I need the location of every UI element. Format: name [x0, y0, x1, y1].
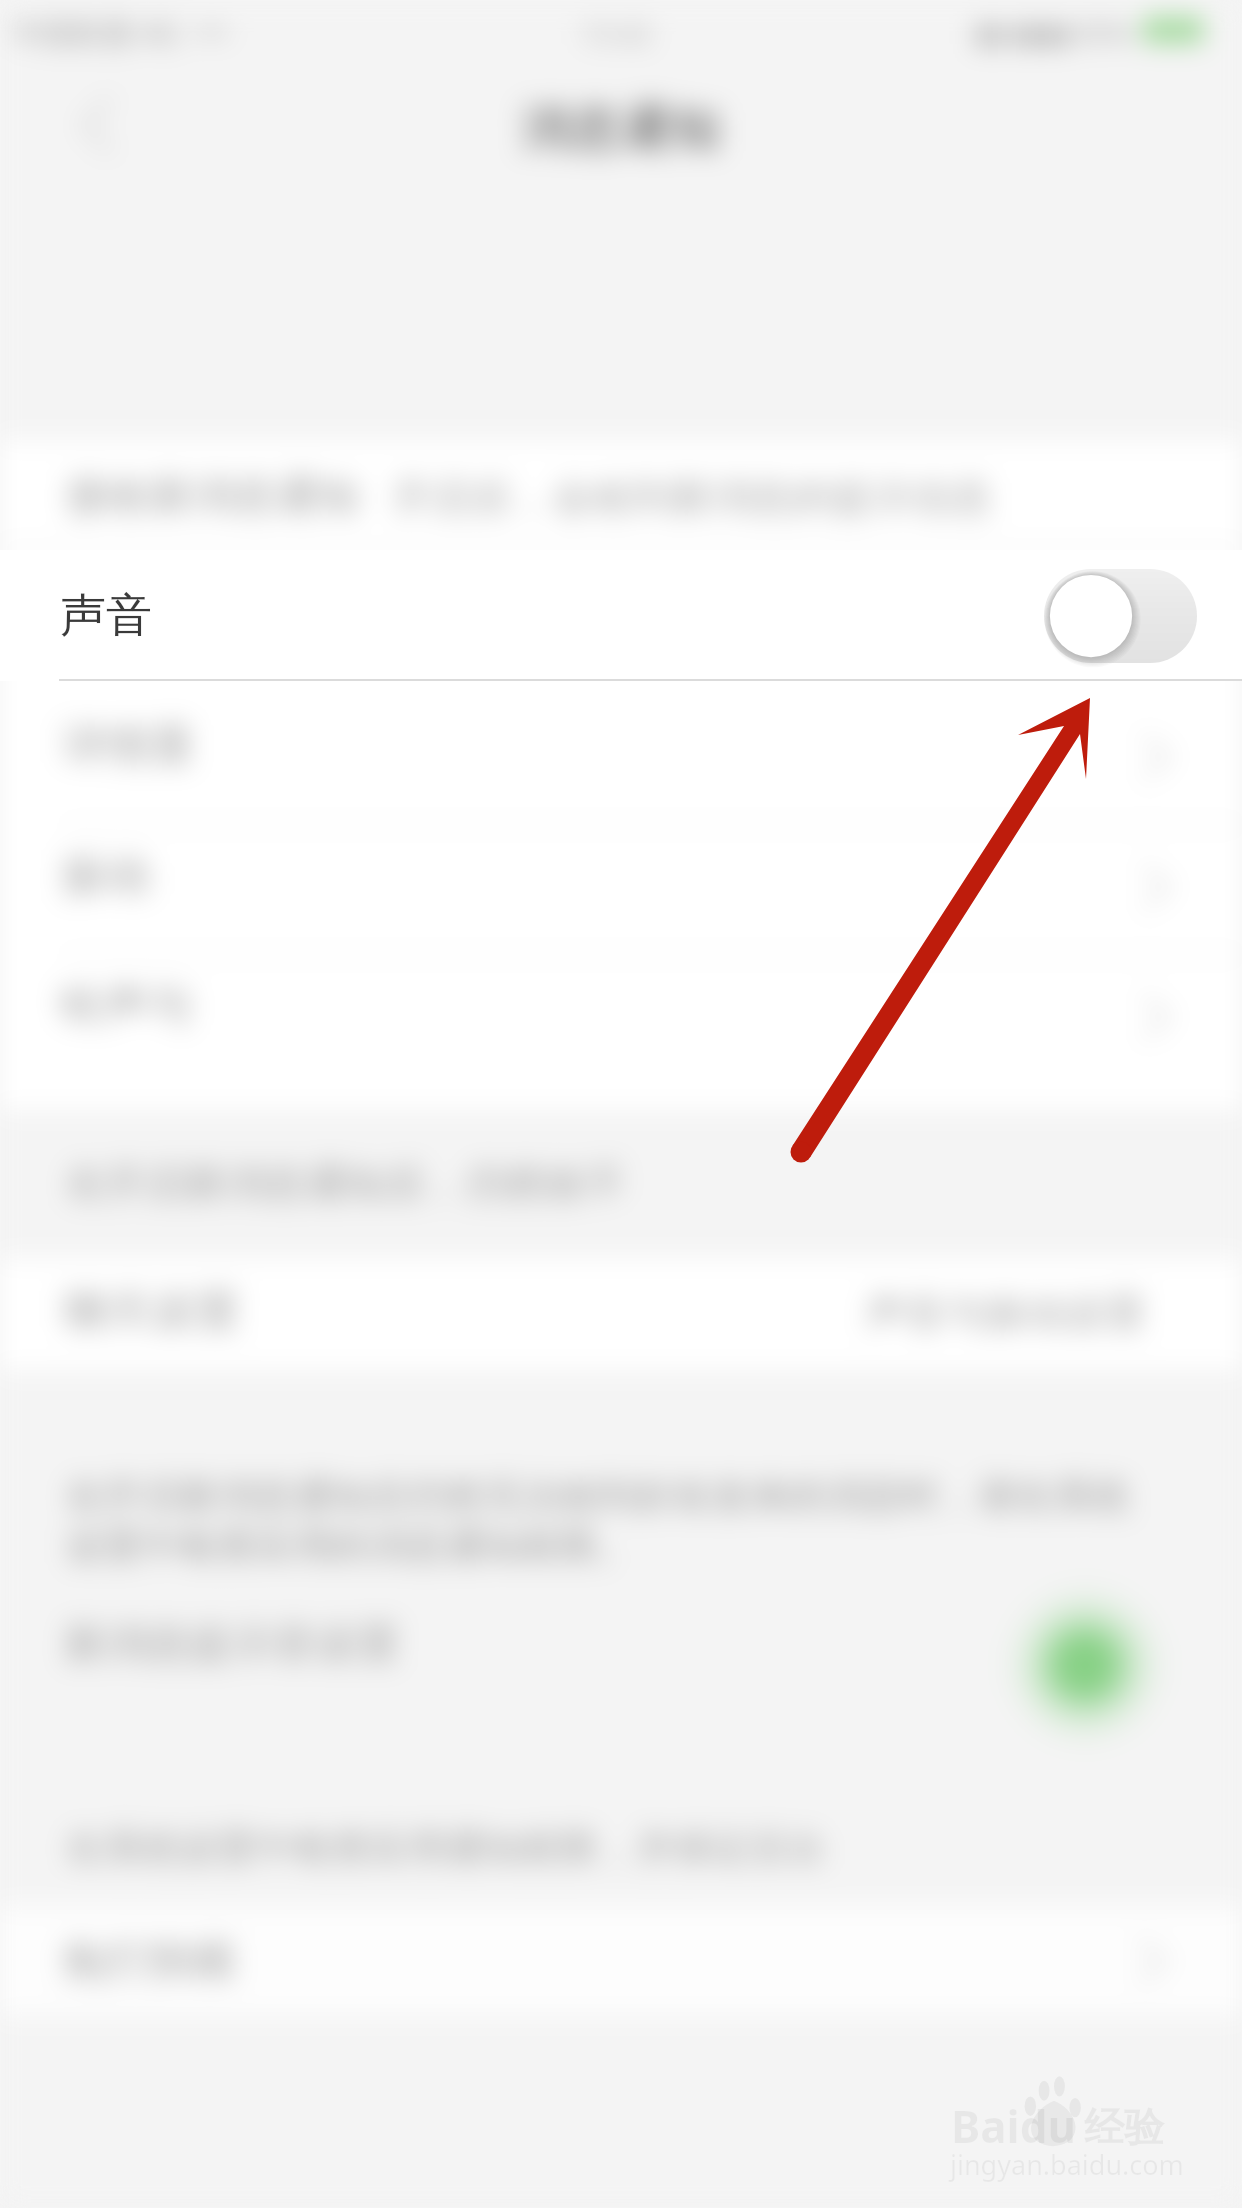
staticText: 在开启新消息通知后仍然无法收到好友发来的消息时，请在系统	[66, 1472, 1130, 1520]
staticText: 消息通知	[521, 97, 721, 160]
staticText: 铃声与	[60, 978, 192, 1033]
button[interactable]: 声音 switch, off	[1044, 569, 1197, 663]
staticText: 开启后，会收到新消息的提示信息	[392, 472, 992, 522]
staticText: 在系统设置中检查应用通知权限，并保证后台	[66, 1824, 826, 1872]
staticText: 聊天设置	[64, 1284, 240, 1339]
button[interactable]	[0, 681, 1242, 824]
staticText: 振动	[62, 848, 150, 903]
staticText: 设置中检查应用的消息通知权限。	[66, 1522, 636, 1570]
button[interactable]	[0, 954, 1242, 1110]
staticText: 声音	[60, 587, 152, 645]
staticText: jingyan.baidu.com	[950, 2146, 1184, 2183]
staticText: 新消息提示音设置	[64, 1618, 400, 1671]
staticText: 中国联通 4G •••	[12, 12, 229, 53]
button[interactable]: 声音	[0, 550, 1242, 681]
button[interactable]	[0, 824, 1242, 954]
staticText: 详情显	[62, 718, 194, 773]
staticText: 免打扰模	[60, 1934, 236, 1989]
button[interactable]	[0, 440, 1242, 549]
staticText: 在开启新消息通知后，仍然收不	[66, 1158, 626, 1208]
staticText: 经验	[1084, 2102, 1164, 2152]
staticText: Baidu	[951, 2096, 1077, 2156]
staticText: 声音与振动设置	[866, 1288, 1146, 1338]
button[interactable]	[0, 1258, 1242, 1370]
staticText: ▮▮ ▮▮▮▮ 85%	[975, 14, 1132, 51]
staticText: 接收新消息通知	[66, 470, 360, 523]
button[interactable]	[0, 1906, 1242, 2016]
